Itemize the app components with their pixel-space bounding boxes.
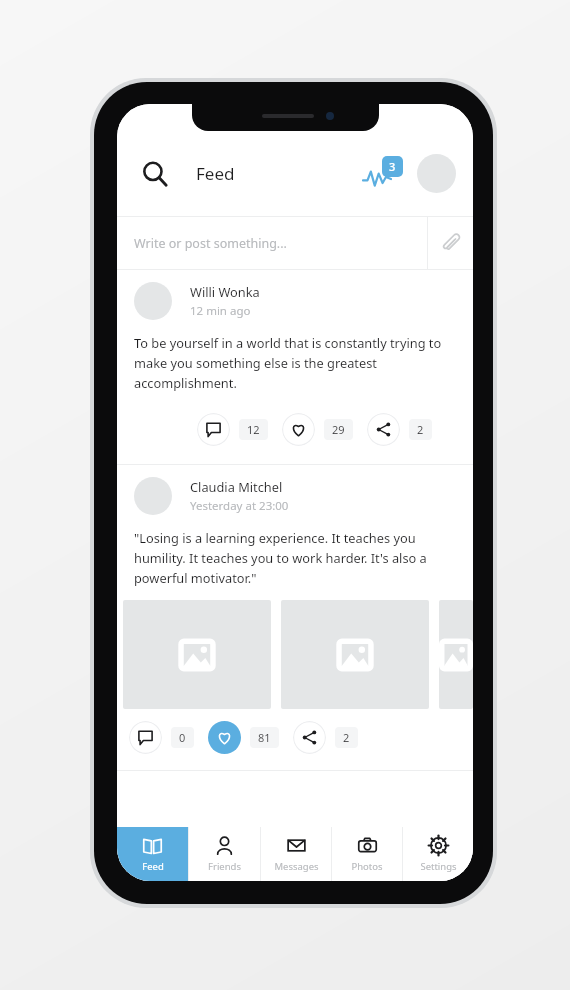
- button[interactable]: 12: [197, 413, 268, 446]
- staticText: Willi Wonka: [190, 283, 260, 300]
- staticText: To be yourself in a world that is consta…: [134, 334, 456, 391]
- button[interactable]: Messages: [261, 827, 331, 881]
- staticText: Write or post something...: [134, 235, 287, 252]
- button[interactable]: Claudia Mitchel avatar: [134, 477, 172, 515]
- button[interactable]: Profile: [417, 154, 456, 193]
- staticText: 2: [343, 730, 350, 745]
- staticText: 29: [332, 422, 345, 437]
- button[interactable]: Friends: [189, 827, 260, 881]
- button[interactable]: [281, 600, 429, 709]
- button[interactable]: 2: [293, 721, 358, 754]
- staticText: 81: [258, 730, 271, 745]
- staticText: Settings: [420, 860, 457, 873]
- button[interactable]: [123, 600, 271, 709]
- staticText: Feed: [196, 162, 235, 185]
- staticText: 12: [247, 422, 260, 437]
- button[interactable]: 81: [208, 721, 279, 754]
- staticText: 0: [179, 730, 186, 745]
- button[interactable]: Willi Wonka avatar: [134, 282, 172, 320]
- button[interactable]: 2: [367, 413, 432, 446]
- button[interactable]: 29: [282, 413, 353, 446]
- staticText: "Losing is a learning experience. It tea…: [134, 529, 456, 586]
- button[interactable]: Notifications: [363, 154, 411, 194]
- staticText: Friends: [208, 860, 241, 873]
- staticText: 12 min ago: [190, 303, 251, 319]
- staticText: Claudia Mitchel: [190, 478, 283, 495]
- staticText: 3: [389, 159, 396, 174]
- staticText: Photos: [351, 860, 383, 873]
- button[interactable]: 0: [129, 721, 194, 754]
- button[interactable]: Photos: [332, 827, 402, 881]
- button[interactable]: Feed: [117, 827, 188, 881]
- button[interactable]: Write or post something...: [117, 217, 427, 269]
- button[interactable]: Attach file: [428, 217, 473, 269]
- button[interactable]: Search: [134, 153, 176, 195]
- staticText: Feed: [142, 860, 164, 873]
- staticText: Messages: [274, 860, 319, 873]
- staticText: 2: [417, 422, 424, 437]
- button[interactable]: Settings: [403, 827, 473, 881]
- button[interactable]: [439, 600, 473, 709]
- staticText: Yesterday at 23:00: [190, 498, 289, 514]
